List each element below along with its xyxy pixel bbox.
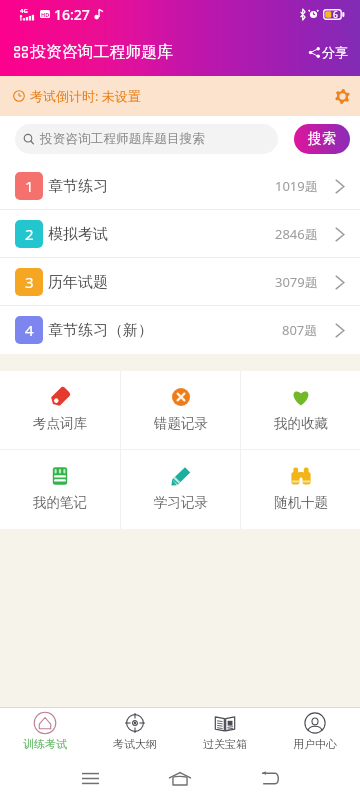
staticText: 用户中心 [293,737,337,751]
staticText: 随机十题 [274,494,328,511]
button[interactable]: 用户中心 [270,707,360,756]
button[interactable]: 随机十题 [241,450,360,529]
button[interactable]: 考点词库 [0,371,120,450]
staticText: 历年试题 [48,273,108,292]
staticText: 投资咨询工程师题库 [30,42,174,62]
staticText: 搜索 [308,130,336,148]
button[interactable]: 4 [0,306,360,354]
button[interactable]: 设置 [326,80,358,112]
staticText: 16:27 [54,5,90,24]
staticText: 章节练习（新） [48,321,153,340]
staticText: 模拟考试 [48,225,108,244]
button[interactable]: 学习记录 [121,450,240,529]
button[interactable]: 我的收藏 [241,371,360,450]
button[interactable]: 我的笔记 [0,450,120,529]
staticText: 2846题 [275,225,318,243]
button[interactable]: Back [251,759,289,797]
staticText: 章节练习 [48,177,108,196]
staticText: 1019题 [275,177,318,195]
staticText: HD [41,11,50,18]
staticText: 6 [333,9,338,20]
button[interactable]: 2 [0,210,360,258]
staticText: 1 [25,176,34,196]
staticText: 3079题 [275,273,318,291]
button[interactable]: 过关宝箱 [180,707,270,756]
staticText: 分享 [322,44,348,60]
staticText: 学习记录 [154,494,208,511]
staticText: 投资咨询工程师题库题目搜索 [40,131,205,147]
button[interactable]: Home [161,759,199,797]
staticText: 考试倒计时: 未设置 [30,87,141,105]
staticText: 考试大纲 [113,737,157,751]
button[interactable]: 训练考试 [0,707,90,756]
button[interactable]: 错题记录 [121,371,240,450]
staticText: 4G [20,7,28,15]
button[interactable]: 1 [0,162,360,210]
staticText: 我的收藏 [274,415,328,432]
staticText: 错题记录 [154,415,208,432]
staticText: 考点词库 [33,415,87,432]
staticText: 我的笔记 [33,494,87,511]
button[interactable]: Recents [71,759,109,797]
button[interactable]: 考试大纲 [90,707,180,756]
button[interactable]: 投资咨询工程师题库题目搜索 [15,124,278,154]
staticText: 2 [25,224,34,244]
staticText: 807题 [282,321,318,339]
staticText: 过关宝箱 [203,737,247,751]
button[interactable]: 3 [0,258,360,306]
staticText: 训练考试 [23,737,67,751]
button[interactable]: 分享 [301,38,356,66]
button[interactable]: 搜索 [294,124,350,154]
staticText: 3 [25,272,34,292]
staticText: 4 [25,320,34,340]
